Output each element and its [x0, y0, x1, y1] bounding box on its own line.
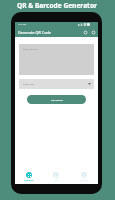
button[interactable]: Scan: [42, 169, 70, 179]
staticText: Select Type: [23, 83, 35, 86]
button[interactable]: Select Type: [19, 79, 94, 89]
button[interactable]: Share: [82, 29, 88, 35]
staticText: Generate: [24, 179, 34, 182]
staticText: History: [80, 179, 88, 182]
button[interactable]: History: [70, 169, 98, 179]
staticText: Generate QR Code: [18, 30, 52, 35]
staticText: 1:14 PM: [18, 23, 27, 26]
staticText: Enter Your Text: [23, 48, 38, 51]
staticText: QR & Barcode Generator: [17, 1, 98, 10]
staticText: GENERATE: [51, 98, 63, 101]
button[interactable]: Generate: [15, 169, 42, 179]
button[interactable]: GENERATE: [27, 95, 86, 104]
button[interactable]: More options: [90, 29, 96, 35]
staticText: Scan: [54, 179, 59, 182]
